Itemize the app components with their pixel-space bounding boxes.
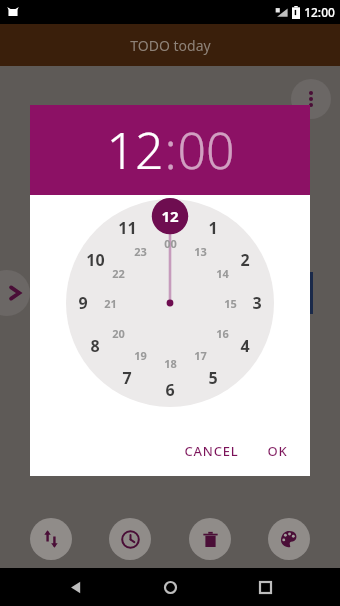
staticText: TODO today: [130, 36, 211, 55]
staticText: 12: [106, 116, 164, 184]
staticText: 00: [164, 236, 177, 251]
staticText: 18: [164, 356, 177, 371]
staticText: 4: [240, 335, 250, 357]
button[interactable]: Home: [150, 568, 190, 606]
staticText: 15: [224, 296, 237, 311]
button[interactable]: CANCEL: [174, 434, 249, 468]
button[interactable]: Theme: [268, 518, 310, 560]
staticText: :: [164, 116, 177, 184]
staticText: 23: [134, 244, 147, 259]
staticText: 2: [240, 249, 250, 271]
staticText: 12:00: [304, 4, 335, 20]
staticText: 10: [86, 249, 105, 271]
button[interactable]: Delete: [189, 518, 231, 560]
button[interactable]: Sort: [30, 518, 72, 560]
staticText: 6: [165, 379, 175, 401]
button[interactable]: More options: [291, 79, 331, 119]
staticText: 5: [208, 367, 218, 389]
staticText: 19: [134, 348, 147, 363]
staticText: 17: [194, 348, 207, 363]
button[interactable]: Set time: [109, 518, 151, 560]
staticText: 11: [118, 217, 137, 239]
staticText: 14: [216, 266, 229, 281]
staticText: OK: [267, 442, 288, 460]
button[interactable]: OK: [257, 434, 298, 468]
staticText: 16: [216, 326, 229, 341]
staticText: 8: [90, 335, 100, 357]
staticText: 21: [104, 296, 117, 311]
button[interactable]: Select hour: [66, 199, 274, 407]
staticText: 7: [122, 367, 132, 389]
staticText: 12: [161, 206, 179, 226]
staticText: 3: [252, 292, 262, 314]
staticText: 13: [194, 244, 207, 259]
button[interactable]: Next day: [0, 270, 30, 316]
button[interactable]: Back: [55, 568, 95, 606]
staticText: 1: [208, 217, 218, 239]
button[interactable]: 00: [177, 116, 235, 184]
staticText: 22: [112, 266, 125, 281]
staticText: 9: [78, 292, 88, 314]
staticText: 00: [177, 116, 235, 184]
staticText: 20: [112, 326, 125, 341]
staticText: CANCEL: [184, 442, 239, 460]
button[interactable]: Recent apps: [245, 568, 285, 606]
button[interactable]: 12: [106, 116, 164, 184]
